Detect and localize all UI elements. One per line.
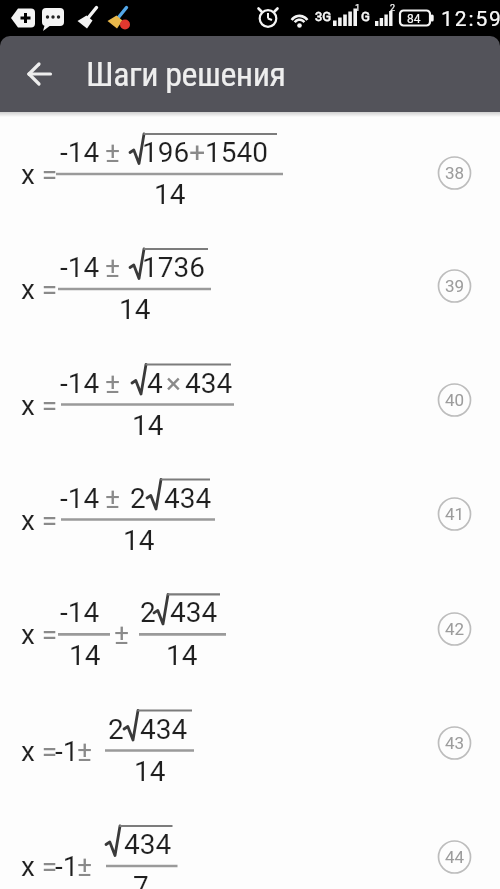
- staticText: 14: [69, 639, 101, 672]
- staticText: 14: [132, 409, 164, 442]
- staticText: 2: [108, 713, 124, 746]
- staticText: Шаги решения: [86, 54, 286, 94]
- staticText: 434: [164, 482, 212, 515]
- staticText: -14: [60, 596, 100, 629]
- staticText: 1736: [142, 251, 205, 284]
- staticText: 12:59: [441, 7, 500, 32]
- button[interactable]: [0, 809, 500, 889]
- staticText: 2: [140, 596, 156, 629]
- staticText: 14: [166, 639, 198, 672]
- staticText: 14: [119, 293, 151, 326]
- staticText: ±: [105, 367, 120, 400]
- staticText: 42: [445, 619, 465, 639]
- staticText: -14: [60, 251, 100, 284]
- staticText: -14: [60, 482, 100, 515]
- button[interactable]: [0, 463, 500, 577]
- staticText: -1: [55, 850, 79, 883]
- staticText: 434: [124, 828, 172, 861]
- staticText: ±: [77, 735, 92, 768]
- staticText: 196+1540: [142, 136, 269, 169]
- staticText: ±: [105, 251, 120, 284]
- staticText: 43: [445, 733, 465, 753]
- staticText: 14: [154, 178, 186, 211]
- staticText: 434: [170, 596, 218, 629]
- staticText: 44: [445, 847, 465, 867]
- staticText: ±: [105, 482, 120, 515]
- staticText: -14: [60, 136, 100, 169]
- staticText: 434: [140, 713, 188, 746]
- staticText: ±: [105, 136, 120, 169]
- staticText: 3G: [315, 9, 332, 24]
- button[interactable]: [0, 694, 500, 808]
- staticText: 41: [445, 504, 465, 524]
- staticText: 38: [445, 163, 465, 183]
- button[interactable]: [16, 50, 64, 98]
- staticText: 40: [445, 390, 465, 410]
- button[interactable]: [0, 232, 500, 346]
- staticText: 2: [130, 482, 146, 515]
- staticText: 2: [390, 3, 396, 14]
- staticText: x =: [21, 389, 58, 422]
- staticText: 14: [123, 524, 155, 557]
- staticText: 434: [185, 367, 233, 400]
- staticText: -1: [55, 735, 79, 768]
- staticText: x =: [21, 158, 58, 191]
- staticText: x =: [21, 850, 58, 883]
- button[interactable]: [0, 348, 500, 462]
- staticText: x =: [21, 735, 58, 768]
- staticText: x =: [21, 504, 58, 537]
- staticText: ±: [114, 618, 129, 651]
- staticText: -14: [60, 367, 100, 400]
- staticText: 4: [147, 367, 163, 400]
- staticText: ±: [77, 850, 92, 883]
- staticText: G: [361, 9, 370, 24]
- staticText: ×: [166, 367, 181, 400]
- staticText: 39: [445, 276, 465, 296]
- staticText: x =: [21, 273, 58, 306]
- staticText: 84: [407, 12, 421, 26]
- staticText: x =: [21, 618, 58, 651]
- button[interactable]: [0, 577, 500, 691]
- staticText: 7: [133, 870, 149, 889]
- staticText: 1: [355, 3, 361, 14]
- button[interactable]: [0, 117, 500, 231]
- staticText: 14: [134, 755, 166, 788]
